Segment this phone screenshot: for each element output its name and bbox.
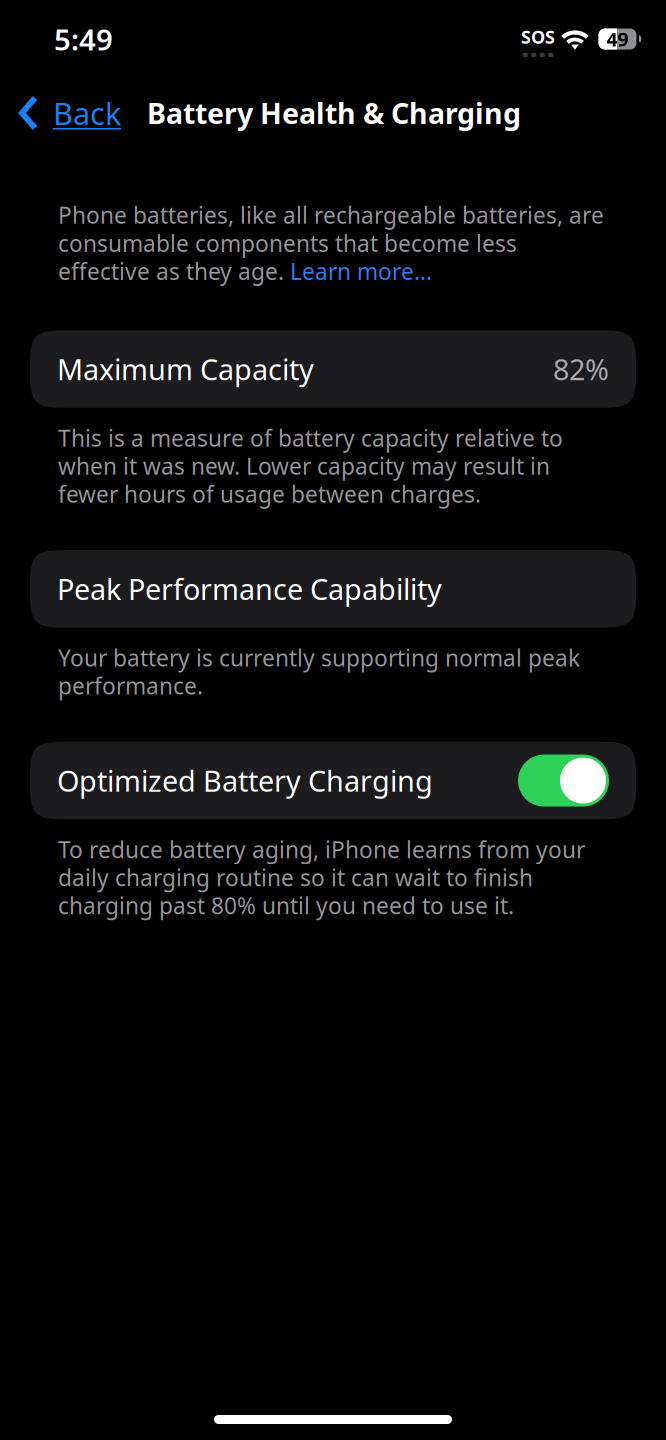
staticText: 82% <box>553 349 609 389</box>
button[interactable]: Back <box>0 85 139 141</box>
staticText: 5:49 <box>54 19 113 59</box>
staticText: 49 <box>606 26 628 52</box>
button[interactable]: Optimized Battery Charging <box>0 742 666 819</box>
staticText: SOS <box>521 24 555 49</box>
staticText: This is a measure of battery capacity re… <box>58 423 563 509</box>
button[interactable]: Maximum Capacity <box>0 330 666 408</box>
staticText: Back <box>53 93 121 133</box>
staticText: Phone batteries, like all rechargeable b… <box>58 200 604 286</box>
staticText: To reduce battery aging, iPhone learns f… <box>58 834 585 921</box>
staticText: Optimized Battery Charging <box>57 761 433 800</box>
staticText: Battery Health & Charging <box>147 94 521 132</box>
button[interactable]: Peak Performance Capability <box>0 550 666 628</box>
staticText: Peak Performance Capability <box>57 569 442 608</box>
staticText: Your battery is currently supporting nor… <box>58 643 580 701</box>
staticText: Maximum Capacity <box>57 349 314 389</box>
